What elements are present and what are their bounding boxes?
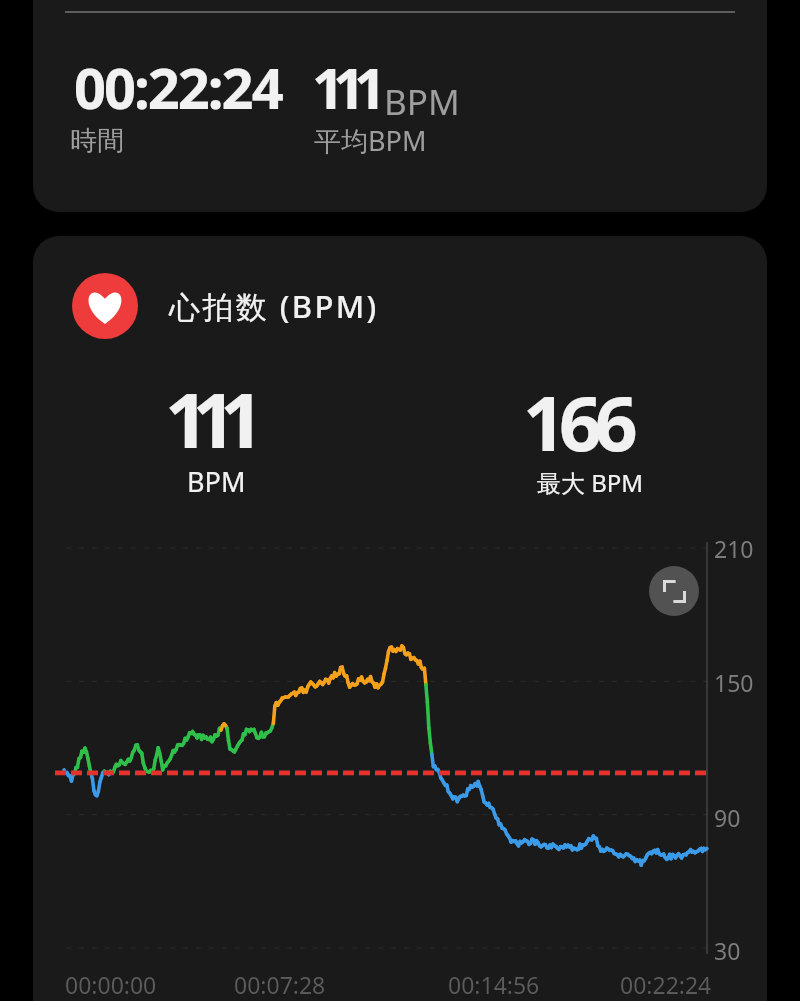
staticText: 00:14:56 <box>448 969 540 1000</box>
staticText: 最大 BPM <box>537 466 644 499</box>
staticText: 00:07:28 <box>234 969 326 1000</box>
button[interactable]: 心拍数 (BPM) <box>33 236 767 1001</box>
staticText: BPM <box>384 78 460 126</box>
staticText: BPM <box>187 463 246 500</box>
staticText: 111 <box>165 367 248 471</box>
staticText: 150 <box>714 667 754 698</box>
staticText: 00:22:24 <box>74 49 282 125</box>
staticText: 心拍数 (BPM) <box>169 285 379 327</box>
staticText: 00:22:24 <box>620 969 712 1000</box>
staticText: 時間 <box>70 124 124 158</box>
staticText: 166 <box>523 371 631 473</box>
staticText: 00:00:00 <box>65 969 157 1000</box>
button[interactable]: Expand chart <box>649 566 699 616</box>
staticText: 30 <box>714 935 741 966</box>
button[interactable]: 00:22:24 <box>33 0 767 212</box>
staticText: 111 <box>312 49 376 125</box>
button[interactable]: 心拍数 (BPM) <box>72 273 379 339</box>
staticText: 210 <box>714 533 754 564</box>
staticText: 90 <box>714 802 741 833</box>
staticText: 平均BPM <box>314 122 427 159</box>
